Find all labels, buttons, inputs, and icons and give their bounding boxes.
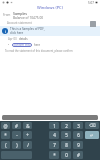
button[interactable]: + <box>23 131 32 139</box>
staticText: i <box>5 29 6 34</box>
button[interactable]: ) <box>12 141 21 149</box>
staticText: 8 <box>65 142 68 148</box>
staticText: 3 <box>77 123 80 129</box>
staticText: Account statement <box>7 21 32 25</box>
staticText: Balance of 10475.00 <box>13 16 44 20</box>
staticText: 5:07 <box>88 1 94 5</box>
staticText: click here <box>10 31 24 35</box>
button[interactable]: / <box>23 141 32 149</box>
staticText: Windows (PC) <box>37 5 63 10</box>
staticText: * <box>53 152 56 158</box>
button[interactable]: 0 <box>61 151 71 159</box>
button[interactable]: Windows (PC) <box>0 5 100 10</box>
staticText: confirm this <box>14 43 30 47</box>
button[interactable]: 1 <box>49 122 59 129</box>
button[interactable]: i <box>2 26 98 36</box>
staticText: 4 <box>53 132 56 138</box>
button[interactable]: Enter <box>85 131 99 139</box>
button[interactable]: * <box>49 151 59 159</box>
staticText: 1 <box>53 123 56 129</box>
staticText: Apr 03 <box>8 37 17 41</box>
button[interactable]: confirm this <box>14 43 30 47</box>
button[interactable]: - <box>12 131 21 139</box>
button[interactable]: 9 <box>73 141 83 149</box>
staticText: ⌫ <box>89 123 96 128</box>
staticText: details <box>19 37 28 41</box>
staticText: Samples <box>13 11 28 16</box>
staticText: * <box>4 132 7 138</box>
button[interactable]: # <box>12 122 21 129</box>
staticText: ↵ <box>90 133 94 138</box>
button[interactable]: 8 <box>61 141 71 149</box>
staticText: + <box>26 132 29 138</box>
button[interactable]: @ <box>1 122 10 129</box>
staticText: / <box>27 142 29 148</box>
staticText: # <box>77 152 80 158</box>
button[interactable]: * <box>1 131 10 139</box>
button[interactable]: 4 <box>49 131 59 139</box>
staticText: & <box>26 123 30 129</box>
button[interactable]: # <box>73 151 83 159</box>
staticText: To read the statement of this document, … <box>5 49 73 53</box>
staticText: • <box>8 43 10 47</box>
button[interactable]: & <box>23 122 32 129</box>
staticText: ( <box>5 142 7 148</box>
staticText: 9 <box>77 142 80 148</box>
button[interactable] <box>2 115 98 120</box>
staticText: This is a Samples of PDF, <box>10 27 45 31</box>
button[interactable]: 7 <box>49 141 59 149</box>
button[interactable]: 5 <box>61 131 71 139</box>
staticText: here <box>34 43 40 47</box>
staticText: 0 <box>65 152 68 158</box>
staticText: - <box>16 132 18 138</box>
staticText: @ <box>3 123 8 129</box>
button[interactable]: Delete <box>85 122 99 129</box>
staticText: 6 <box>77 132 80 138</box>
staticText: # <box>15 123 18 129</box>
button[interactable]: 2 <box>61 122 71 129</box>
button[interactable]: ( <box>1 141 10 149</box>
staticText: 7 <box>53 142 56 148</box>
button[interactable]: 3 <box>73 122 83 129</box>
staticText: 5 <box>65 132 68 138</box>
staticText: From <box>3 13 11 17</box>
staticText: ) <box>16 142 18 148</box>
button[interactable]: 6 <box>73 131 83 139</box>
staticText: 2 <box>65 123 68 129</box>
